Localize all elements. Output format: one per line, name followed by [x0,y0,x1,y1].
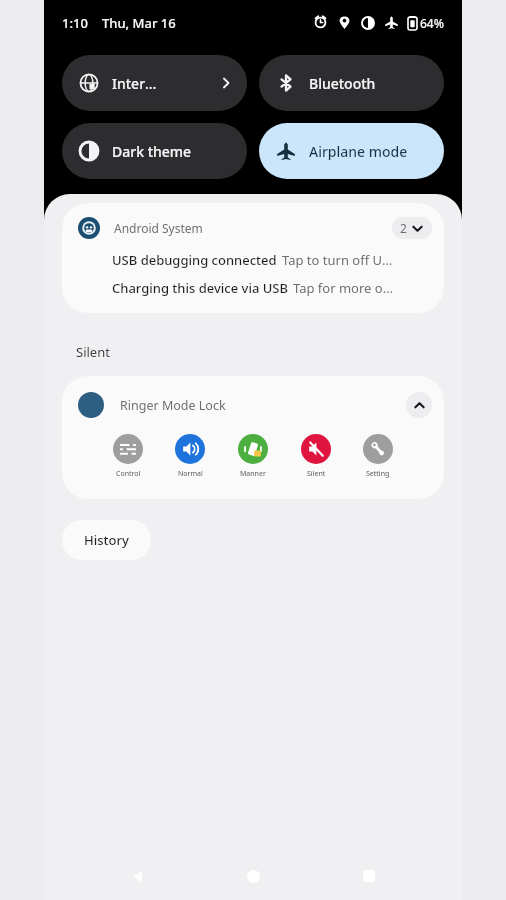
staticText: 2 [400,220,407,236]
button[interactable]: Normal [171,432,209,481]
staticText: Ringer Mode Lock [120,397,406,414]
staticText: Charging this device via USB [112,279,288,297]
button[interactable]: History [62,520,151,560]
staticText: Tap for more opti… [293,279,394,297]
button[interactable]: Manner [234,432,272,481]
button[interactable]: Control [109,432,147,481]
staticText: USB debugging connected [112,251,277,269]
button[interactable]: Recent apps [347,854,391,898]
button[interactable]: Bluetooth [259,55,444,111]
staticText: Android System [114,220,392,236]
staticText: Manner [240,469,266,479]
staticText: Silent [307,469,326,479]
button[interactable]: Android System [62,203,444,313]
staticText: Tap to turn off USB… [282,251,394,269]
staticText: 64% [420,15,444,31]
staticText: Thu, Mar 16 [102,14,176,32]
staticText: Control [116,469,141,479]
button[interactable]: Ringer Mode Lock [62,376,444,499]
staticText: Airplane mode [309,142,408,161]
button[interactable]: Collapse [406,392,432,418]
button[interactable]: USB debugging connected [62,251,444,269]
button[interactable]: Dark theme [62,123,247,179]
button[interactable]: Setting [359,432,397,481]
button[interactable]: Expand group [392,217,432,239]
staticText: Normal [178,469,203,479]
staticText: Dark theme [112,142,192,161]
button[interactable]: Home [231,854,275,898]
staticText: History [84,531,129,549]
staticText: Silent [76,343,110,361]
staticText: 1:10 [62,14,88,32]
button[interactable]: Charging this device via USB [62,279,444,297]
staticText: Setting [366,469,390,479]
button[interactable]: Airplane mode [259,123,444,179]
staticText: Bluetooth [309,74,376,93]
button[interactable]: Silent [297,432,335,481]
button[interactable]: Internet [62,55,247,111]
staticText: Internet [112,74,165,93]
